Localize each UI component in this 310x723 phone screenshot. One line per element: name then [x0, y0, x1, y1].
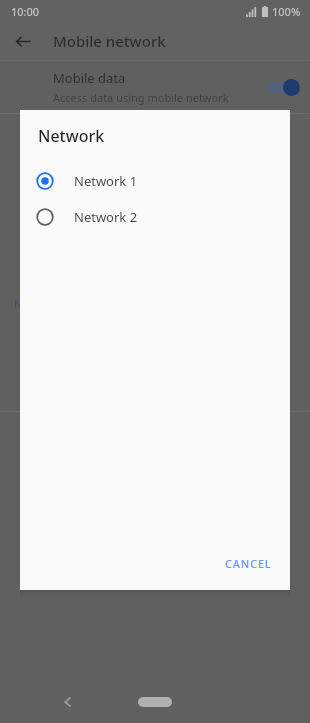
staticText: Network — [14, 296, 59, 311]
button[interactable]: CANCEL — [217, 550, 280, 577]
staticText: CANCEL — [225, 556, 272, 571]
staticText: Mobile data — [53, 69, 126, 87]
staticText: 10:00 — [11, 4, 40, 19]
staticText: Network 1 — [74, 172, 138, 190]
staticText: Network — [38, 125, 105, 147]
button[interactable]: Home — [138, 697, 172, 707]
button[interactable]: Network 2 — [20, 199, 290, 235]
staticText: Network 2 — [74, 208, 138, 226]
button[interactable]: Network 1 — [20, 163, 290, 199]
button[interactable]: Back — [52, 686, 84, 718]
staticText: Mobile network — [53, 31, 166, 51]
button[interactable]: Back — [8, 26, 38, 56]
staticText: 100% — [272, 4, 301, 19]
staticText: Access data using mobile network — [53, 90, 229, 105]
button[interactable]: Mobile data — [0, 61, 310, 113]
